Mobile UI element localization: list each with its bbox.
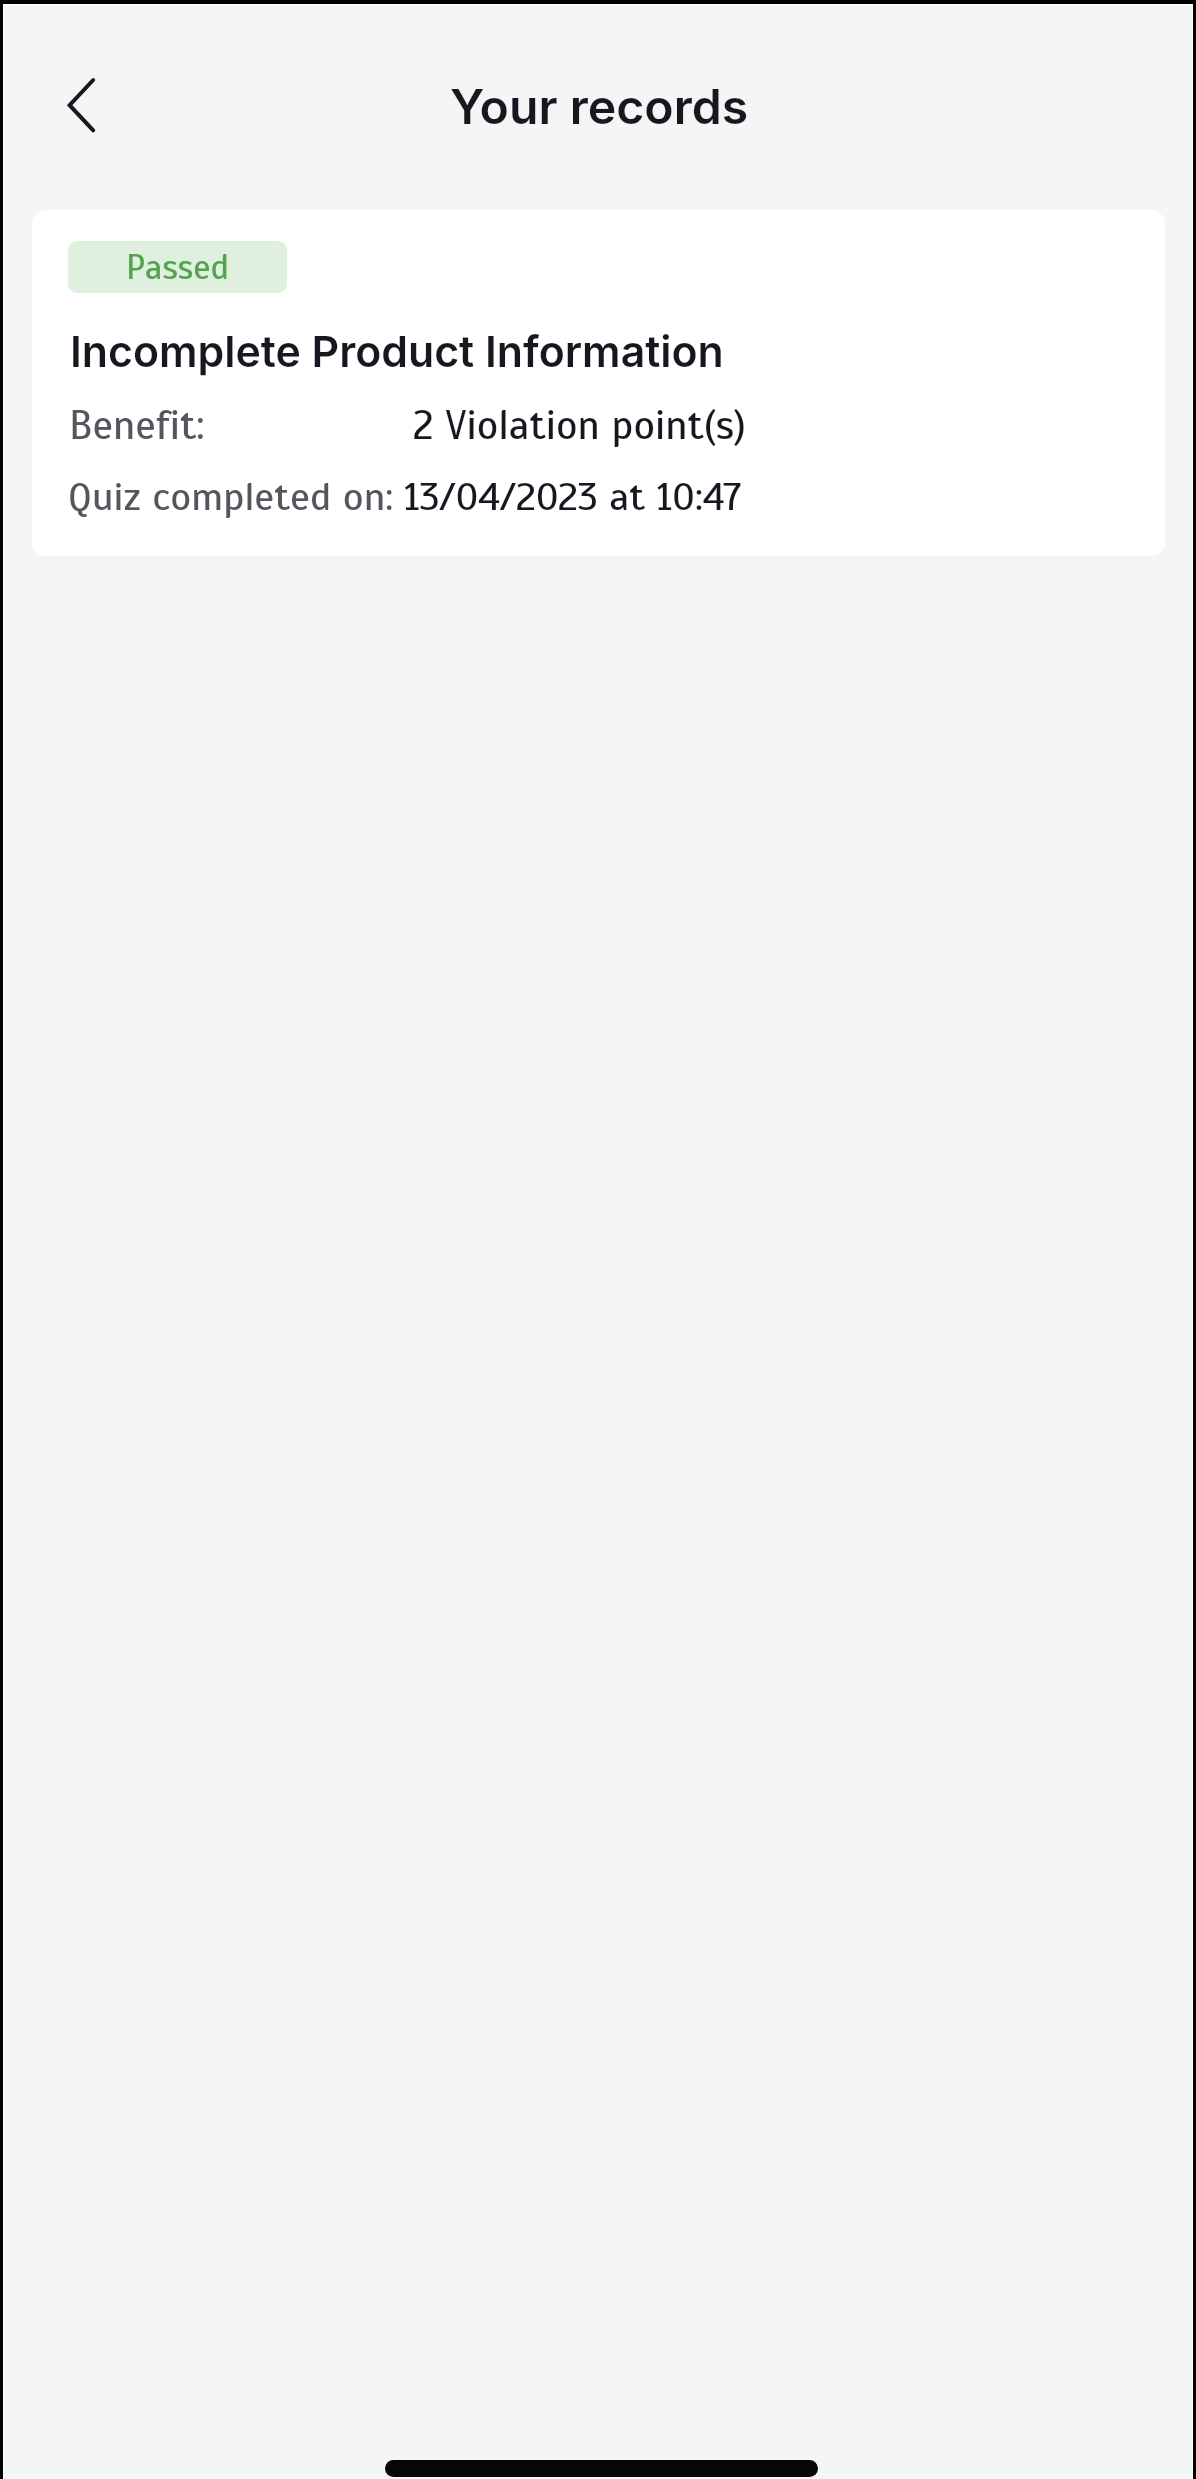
- staticText: Your records: [450, 77, 749, 135]
- staticText: Benefit:: [69, 400, 205, 451]
- staticText: Passed: [126, 246, 229, 289]
- button[interactable]: Back: [37, 46, 131, 140]
- button[interactable]: Passed: [32, 210, 1165, 556]
- staticText: Quiz completed on:: [68, 472, 394, 521]
- staticText: 2 Violation point(s): [413, 400, 746, 451]
- staticText: Incomplete Product Information: [70, 326, 724, 378]
- staticText: 13/04/2023 at 10:47: [404, 472, 741, 521]
